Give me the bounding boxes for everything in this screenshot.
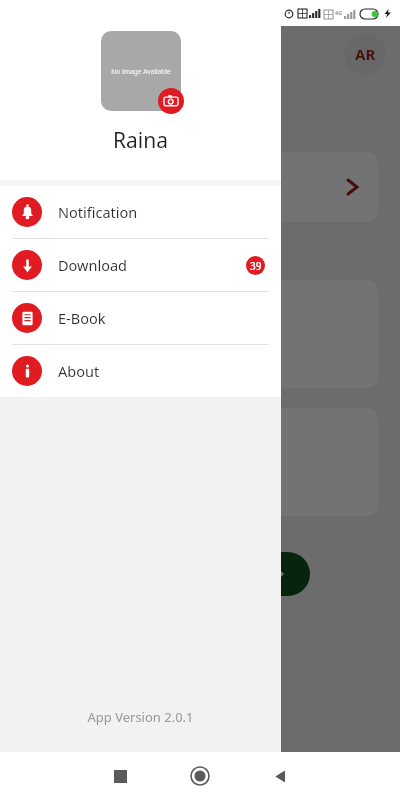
staticText: No Image Available [111,67,171,76]
staticText: AR [355,44,376,64]
button[interactable]: 04/20 [22,152,378,222]
button[interactable]: No Image Available [98,28,184,114]
button[interactable]: E-Book [0,292,281,344]
staticText: App Version 2.0.1 [0,708,281,726]
staticText: 4G [335,9,343,16]
staticText: 04/20 [38,165,92,192]
staticText: About [58,361,100,381]
staticText: Raina [113,126,169,155]
button[interactable]: Back [240,752,320,800]
staticText: Speaking [38,358,103,378]
button[interactable]: Writing [22,408,378,516]
button[interactable]: Change profile photo [158,88,184,114]
button[interactable]: Download [0,239,281,291]
staticText: 39 [250,259,262,273]
button[interactable]: Speaking [22,280,378,388]
button[interactable]: Buy Now! [110,552,310,596]
staticText: E-Book [58,308,106,328]
staticText: Attempt [38,192,88,210]
staticText: Notification [58,202,138,222]
button[interactable]: Recent apps [80,752,160,800]
staticText: Download [58,255,127,275]
button[interactable]: About [0,345,281,397]
button[interactable]: AR [344,33,386,75]
button[interactable]: Notification [0,186,281,238]
button[interactable]: Home [160,752,240,800]
